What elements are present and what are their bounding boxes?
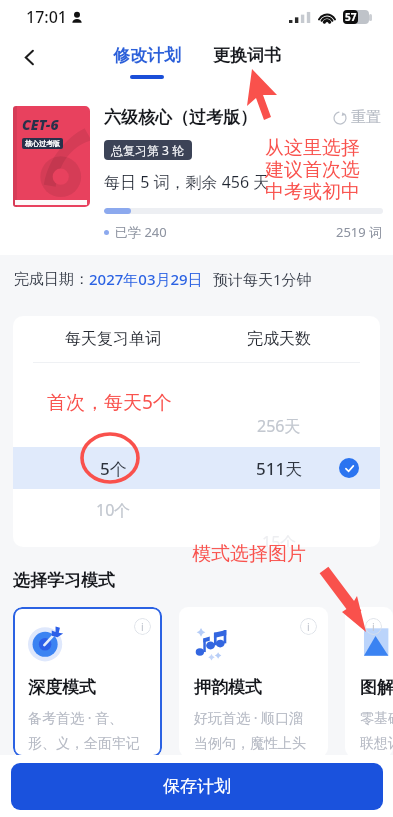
- button[interactable]: Info: [300, 618, 317, 635]
- staticText: 17:01: [26, 6, 67, 28]
- staticText: 模式选择图片: [192, 542, 306, 566]
- staticText: 选择学习模式: [13, 570, 115, 591]
- staticText: 好玩首选 · 顺口溜 当例句，魔性上头: [194, 708, 306, 752]
- staticText: i: [372, 619, 375, 634]
- button[interactable]: Back: [9, 37, 49, 77]
- button[interactable]: 修改计划: [105, 43, 189, 81]
- staticText: 深度模式: [28, 677, 96, 698]
- staticText: 511天: [256, 457, 303, 480]
- staticText: i: [141, 619, 144, 634]
- button[interactable]: 重置: [330, 106, 383, 129]
- staticText: 256天: [257, 415, 301, 437]
- staticText: 备考首选 · 音、 形、义，全面牢记: [28, 708, 140, 752]
- staticText: 完成天数: [247, 329, 311, 349]
- staticText: 修改计划: [113, 45, 181, 66]
- staticText: i: [307, 619, 310, 634]
- button[interactable]: 10个: [13, 489, 380, 531]
- button[interactable]: [13, 363, 380, 405]
- button[interactable]: 5个: [13, 447, 380, 489]
- staticText: 5个: [100, 457, 127, 480]
- staticText: 每天复习单词: [65, 329, 161, 349]
- staticText: CET-6: [22, 115, 59, 134]
- staticText: 预计每天1分钟: [213, 269, 312, 289]
- button[interactable]: 押韵模式: [179, 607, 328, 757]
- button[interactable]: 256天: [13, 405, 380, 447]
- button[interactable]: Info: [365, 618, 382, 635]
- staticText: 重置: [351, 108, 381, 127]
- staticText: 2519 词: [336, 223, 383, 241]
- staticText: 15个: [262, 531, 297, 547]
- button[interactable]: Info: [134, 618, 151, 635]
- staticText: 57: [345, 10, 357, 24]
- button[interactable]: 深度模式: [13, 607, 162, 757]
- button[interactable]: 更换词书: [205, 43, 289, 81]
- staticText: 保存计划: [163, 776, 231, 797]
- button[interactable]: 图解模式: [345, 607, 393, 757]
- button[interactable]: 保存计划: [11, 763, 383, 810]
- button[interactable]: 15个: [13, 531, 380, 547]
- staticText: 已学 240: [115, 223, 167, 241]
- staticText: 2027年03月29日: [89, 269, 203, 289]
- staticText: 总复习第 3 轮: [111, 142, 185, 158]
- staticText: 10个: [96, 499, 131, 521]
- staticText: 首次，每天5个: [47, 389, 172, 415]
- staticText: 更换词书: [213, 45, 281, 66]
- staticText: 每日 5 词，剩余 456 天: [104, 171, 270, 193]
- staticText: 核心过考版: [25, 139, 60, 148]
- staticText: 完成日期：: [14, 270, 89, 289]
- staticText: 押韵模式: [194, 677, 262, 698]
- staticText: 零基础 · 图文 联想记忆: [360, 708, 393, 752]
- staticText: 从这里选择 建议首次选 中考或初中: [265, 136, 360, 204]
- staticText: 图解模式: [360, 677, 393, 698]
- staticText: 六级核心（过考版）: [104, 107, 257, 128]
